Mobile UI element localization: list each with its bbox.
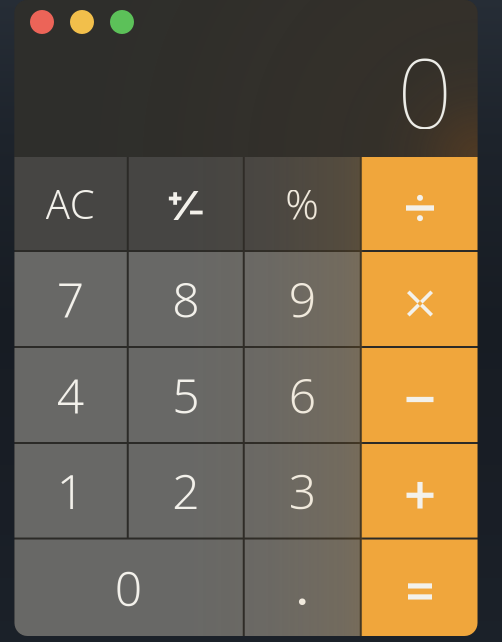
button[interactable]: Multiply: [362, 252, 478, 346]
button[interactable]: Close window: [30, 10, 54, 34]
button[interactable]: AC: [14, 157, 127, 250]
button[interactable]: 1: [14, 444, 127, 537]
staticText: 2: [172, 459, 199, 523]
staticText: 1: [57, 459, 84, 523]
button[interactable]: 5: [129, 348, 243, 442]
button[interactable]: Equals: [362, 539, 478, 636]
button[interactable]: %: [245, 157, 360, 250]
staticText: %: [285, 176, 319, 231]
button[interactable]: 7: [14, 252, 127, 346]
staticText: 8: [172, 267, 199, 331]
button[interactable]: Minimize window: [70, 10, 94, 34]
staticText: 6: [289, 363, 316, 427]
button[interactable]: 8: [129, 252, 243, 346]
button[interactable]: 6: [245, 348, 360, 442]
button[interactable]: Decimal point: [245, 539, 360, 636]
button[interactable]: 4: [14, 348, 127, 442]
staticText: 9: [289, 267, 316, 331]
staticText: 0: [115, 556, 142, 620]
staticText: 0: [397, 26, 452, 155]
button[interactable]: Toggle sign: [129, 157, 243, 250]
button[interactable]: 2: [129, 444, 243, 537]
staticText: 5: [172, 363, 199, 427]
button[interactable]: Divide: [362, 157, 478, 250]
staticText: 4: [57, 363, 84, 427]
button[interactable]: 9: [245, 252, 360, 346]
button[interactable]: Add: [362, 444, 478, 537]
staticText: 7: [57, 267, 84, 331]
button[interactable]: 0: [14, 539, 243, 636]
button[interactable]: Zoom window: [110, 10, 134, 34]
button[interactable]: Subtract: [362, 348, 478, 442]
staticText: AC: [46, 177, 95, 230]
button[interactable]: 3: [245, 444, 360, 537]
staticText: 3: [289, 459, 316, 523]
